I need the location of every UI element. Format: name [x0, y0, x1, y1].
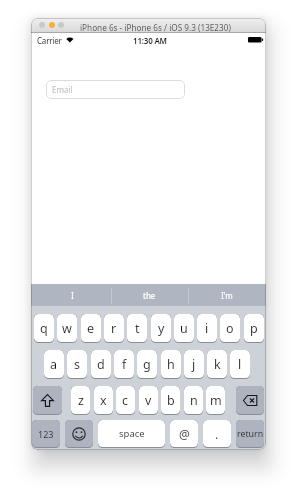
button[interactable] — [58, 22, 64, 28]
button[interactable]: y — [151, 314, 171, 343]
button[interactable]: g — [137, 350, 157, 379]
staticText: d — [97, 356, 105, 373]
staticText: b — [167, 392, 175, 409]
button[interactable]: d — [91, 350, 111, 379]
button[interactable]: Email — [46, 80, 185, 99]
staticText: Carrier — [37, 35, 62, 46]
staticText: h — [167, 356, 175, 373]
button[interactable]: q — [34, 314, 54, 343]
button[interactable]: t — [127, 314, 147, 343]
button[interactable]: the — [111, 284, 188, 307]
staticText: y — [158, 320, 165, 337]
button[interactable] — [236, 386, 264, 415]
button[interactable]: c — [116, 386, 135, 415]
staticText: s — [74, 356, 80, 373]
button[interactable]: r — [104, 314, 124, 343]
staticText: f — [122, 356, 127, 373]
button[interactable] — [33, 386, 62, 415]
staticText: i — [205, 320, 209, 337]
staticText: . — [215, 426, 219, 442]
staticText: c — [122, 392, 129, 409]
button[interactable]: o — [220, 314, 240, 343]
button[interactable]: f — [114, 350, 134, 379]
staticText: t — [135, 320, 140, 337]
button[interactable] — [65, 420, 93, 448]
staticText: u — [180, 320, 188, 337]
staticText: return — [237, 428, 264, 440]
staticText: 11:30 AM — [133, 35, 167, 46]
button[interactable]: z — [71, 386, 90, 415]
staticText: r — [111, 320, 117, 337]
button[interactable]: j — [184, 350, 204, 379]
staticText: p — [250, 320, 258, 337]
staticText: the — [143, 290, 156, 301]
staticText: z — [78, 392, 84, 409]
button[interactable]: space — [98, 420, 165, 448]
staticText: e — [87, 320, 95, 337]
button[interactable]: v — [139, 386, 158, 415]
staticText: w — [62, 320, 72, 337]
button[interactable] — [39, 22, 45, 28]
button[interactable]: u — [174, 314, 194, 343]
staticText: iPhone 6s - iPhone 6s / iOS 9.3 (13E230) — [80, 22, 231, 33]
button[interactable]: x — [94, 386, 113, 415]
button[interactable]: 123 — [32, 420, 60, 448]
staticText: Email — [52, 84, 73, 95]
staticText: I'm — [221, 290, 233, 301]
button[interactable]: s — [67, 350, 87, 379]
staticText: m — [210, 392, 222, 409]
button[interactable]: m — [206, 386, 225, 415]
staticText: I — [71, 290, 74, 301]
button[interactable]: @ — [170, 420, 198, 448]
staticText: space — [119, 427, 145, 440]
button[interactable]: . — [203, 420, 231, 448]
staticText: g — [143, 356, 151, 373]
staticText: n — [190, 392, 198, 409]
staticText: j — [192, 356, 196, 373]
button[interactable]: k — [207, 350, 227, 379]
staticText: l — [238, 356, 242, 373]
button[interactable]: b — [161, 386, 180, 415]
button[interactable]: n — [184, 386, 203, 415]
staticText: k — [214, 356, 221, 373]
button[interactable]: a — [44, 350, 64, 379]
button[interactable]: l — [230, 350, 250, 379]
staticText: @ — [179, 426, 190, 442]
staticText: 123 — [38, 428, 54, 440]
staticText: a — [50, 356, 58, 373]
button[interactable]: return — [236, 420, 264, 448]
button[interactable]: i — [197, 314, 217, 343]
button[interactable]: I'm — [188, 284, 266, 307]
button[interactable]: h — [161, 350, 181, 379]
staticText: o — [226, 320, 234, 337]
button[interactable]: I — [33, 284, 111, 307]
button[interactable]: p — [244, 314, 264, 343]
staticText: q — [40, 320, 48, 337]
staticText: x — [100, 392, 107, 409]
staticText: v — [145, 392, 152, 409]
button[interactable]: e — [81, 314, 101, 343]
button[interactable]: w — [57, 314, 77, 343]
button[interactable] — [49, 22, 55, 28]
